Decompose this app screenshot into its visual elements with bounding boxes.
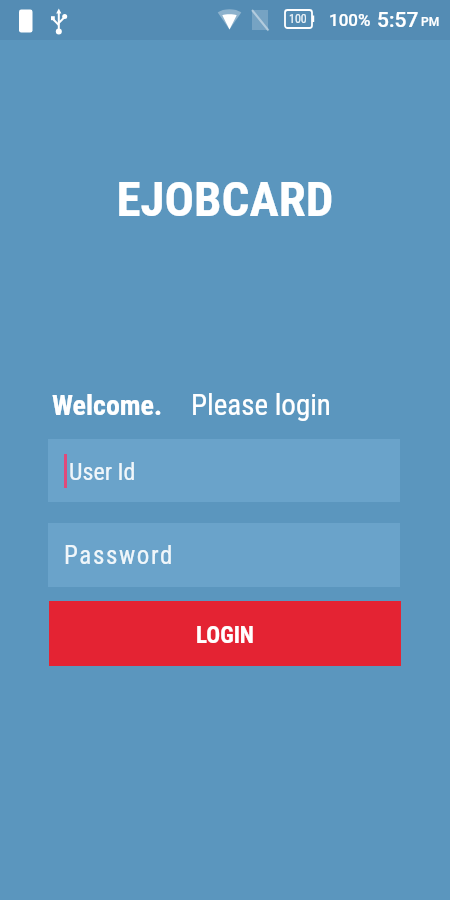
button[interactable]: Password input field — [48, 523, 400, 587]
staticText: Password — [64, 541, 174, 570]
staticText: LOGIN — [196, 622, 254, 649]
button[interactable]: User Id input field — [48, 439, 400, 502]
staticText: Please login — [191, 388, 331, 422]
staticText: 100% — [329, 10, 371, 30]
staticText: PM — [421, 15, 440, 29]
staticText: Welcome. — [52, 389, 163, 422]
button[interactable]: LOGIN — [49, 601, 401, 666]
staticText: User Id — [69, 458, 136, 486]
staticText: EJOBCARD — [0, 171, 450, 228]
staticText: 100 — [289, 12, 307, 26]
staticText: 5:57 — [377, 8, 419, 33]
